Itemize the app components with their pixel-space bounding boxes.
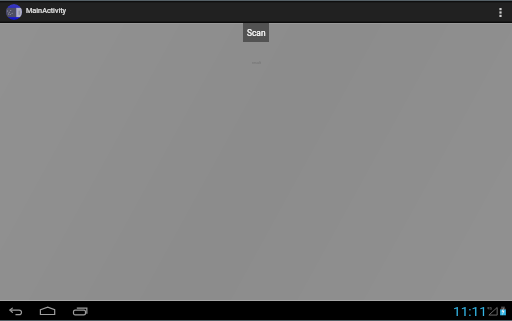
button[interactable]: More options (490, 1, 510, 23)
button[interactable]: Recent apps (63, 301, 95, 320)
button[interactable]: Scan (243, 23, 269, 42)
staticText: result (252, 61, 261, 65)
staticText: Scan (247, 28, 266, 38)
staticText: 11:11 (453, 303, 487, 319)
button[interactable]: Back (0, 301, 31, 320)
button[interactable]: App icon (6, 4, 22, 20)
button[interactable]: Home (31, 301, 63, 320)
staticText: MainActivity (26, 6, 67, 15)
